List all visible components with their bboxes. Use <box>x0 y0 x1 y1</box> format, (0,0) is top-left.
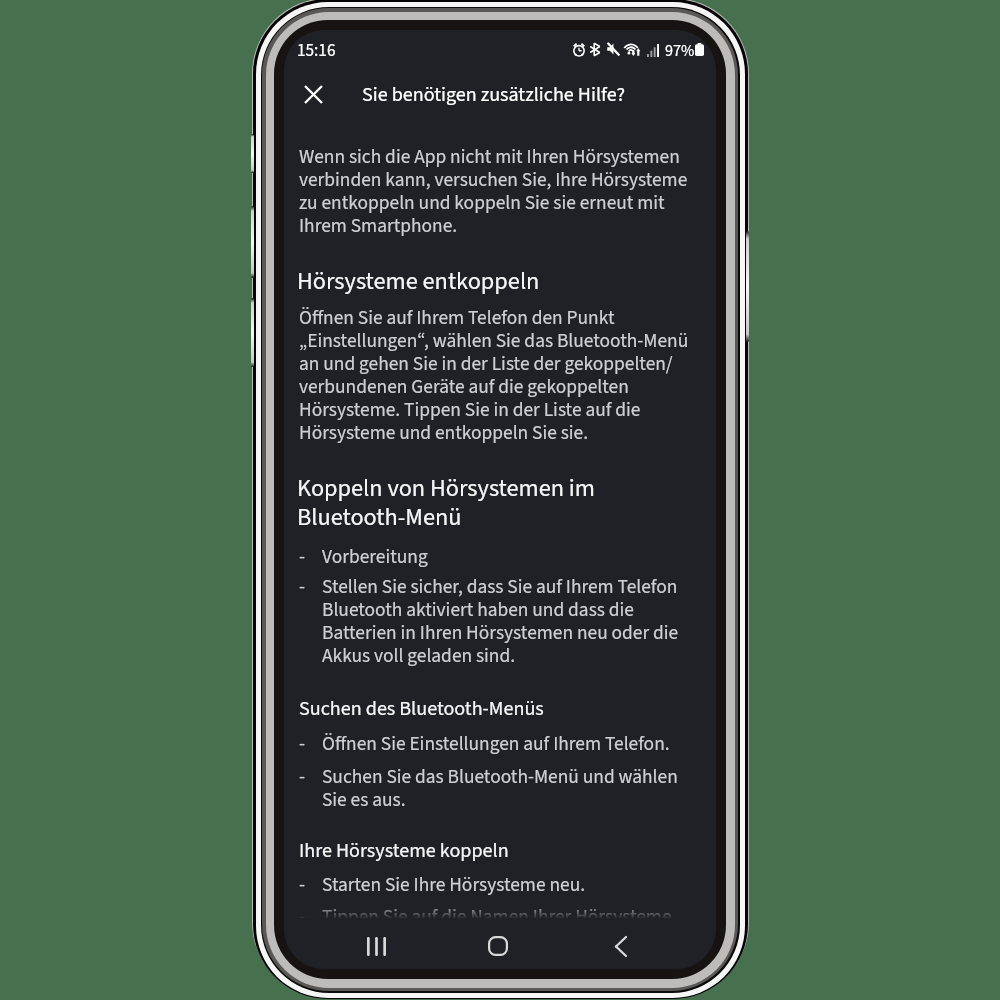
staticText: Öffnen Sie auf Ihrem Telefon den Punkt „… <box>299 304 703 447</box>
staticText: Ihre Hörsysteme koppeln <box>299 836 703 865</box>
staticText: Stellen Sie sicher, dass Sie auf Ihrem T… <box>322 573 703 670</box>
button[interactable]: Schließen <box>290 71 336 117</box>
staticText: Öffnen Sie Einstellungen auf Ihrem Telef… <box>322 730 670 758</box>
staticText: Tippen Sie auf die Namen Ihrer Hörsystem… <box>322 903 672 931</box>
button[interactable]: Letzte Apps <box>353 923 399 969</box>
staticText: Wenn sich die App nicht mit Ihren Hörsys… <box>299 143 703 240</box>
staticText: Suchen des Bluetooth-Menüs <box>299 694 703 723</box>
staticText: Suchen Sie das Bluetooth-Menü und wählen… <box>322 763 703 814</box>
staticText: Vorbereitung <box>322 543 428 571</box>
staticText: - <box>299 763 322 791</box>
button[interactable]: Startbildschirm <box>475 923 521 969</box>
staticText: 15:16 <box>297 38 336 62</box>
staticText: Koppeln von Hörsystemen im Bluetooth-Men… <box>297 471 701 535</box>
staticText: Sie benötigen zusätzliche Hilfe? <box>362 80 626 109</box>
staticText: - <box>299 543 322 571</box>
staticText: 97% <box>665 40 695 63</box>
staticText: Starten Sie Ihre Hörsysteme neu. <box>322 871 586 899</box>
staticText: - <box>299 871 322 899</box>
staticText: Hörsysteme entkoppeln <box>297 264 701 299</box>
staticText: - <box>299 730 322 758</box>
button[interactable]: Zurück <box>598 923 644 969</box>
staticText: - <box>299 573 322 601</box>
